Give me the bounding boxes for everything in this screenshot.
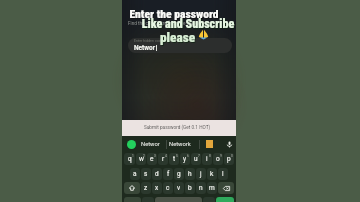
staticText: c — [166, 184, 170, 192]
button[interactable]: i — [202, 153, 212, 165]
staticText: t — [173, 155, 176, 163]
staticText: Networ — [134, 44, 156, 52]
button[interactable]: Voice input — [224, 139, 234, 149]
button[interactable]: c — [163, 182, 173, 194]
staticText: 1 — [132, 154, 134, 158]
staticText: s — [144, 170, 148, 178]
staticText: x — [155, 184, 159, 192]
button[interactable]: x — [152, 182, 162, 194]
staticText: j — [200, 170, 202, 178]
button[interactable]: u — [191, 153, 201, 165]
button[interactable]: l — [218, 168, 228, 180]
staticText: Submit password (Get 0.1 HOT) — [144, 125, 211, 131]
staticText: w — [139, 155, 144, 163]
button[interactable]: w — [136, 153, 146, 165]
staticText: i — [206, 155, 208, 163]
button[interactable]: a — [130, 168, 140, 180]
staticText: please — [160, 30, 196, 46]
staticText: 7 — [198, 154, 200, 158]
staticText: g — [177, 170, 181, 178]
button[interactable]: r — [158, 153, 168, 165]
button[interactable]: Enter — [216, 197, 234, 202]
button[interactable]: d — [152, 168, 162, 180]
staticText: 6 — [187, 154, 189, 158]
staticText: Networ — [141, 141, 160, 148]
button[interactable]: e — [147, 153, 157, 165]
button[interactable]: Backspace — [218, 182, 234, 194]
staticText: 0 — [231, 154, 233, 158]
staticText: m — [209, 184, 215, 192]
staticText: 4 — [165, 154, 167, 158]
staticText: k — [210, 170, 214, 178]
button[interactable]: g — [174, 168, 184, 180]
button[interactable]: n — [196, 182, 206, 194]
button[interactable]: v — [174, 182, 184, 194]
button[interactable]: h — [185, 168, 195, 180]
staticText: Enter the password — [118, 8, 232, 22]
staticText: Like and Subscribe — [132, 18, 246, 32]
staticText: z — [144, 184, 148, 192]
staticText: b — [188, 184, 192, 192]
button[interactable]: b — [185, 182, 195, 194]
staticText: Enter hidden codeword — [134, 39, 171, 43]
staticText: Find the code word from the source — [128, 21, 201, 26]
staticText: r — [162, 155, 165, 163]
staticText: o — [216, 155, 220, 163]
button[interactable]: j — [196, 168, 206, 180]
staticText: Network — [169, 141, 191, 148]
button[interactable]: k — [207, 168, 217, 180]
staticText: 8 — [209, 154, 211, 158]
staticText: q — [128, 155, 132, 163]
staticText: a — [133, 170, 137, 178]
staticText: 2 — [143, 154, 145, 158]
button[interactable]: Google Assistant — [127, 140, 136, 149]
staticText: y — [183, 155, 187, 163]
button[interactable]: Submit password (Get 0.1 HOT) — [122, 120, 236, 136]
button[interactable]: m — [207, 182, 217, 194]
staticText: Like and Subscribe — [131, 17, 245, 31]
button[interactable]: q — [124, 153, 135, 165]
staticText: u — [194, 155, 198, 163]
button[interactable]: f — [163, 168, 173, 180]
button[interactable]: t — [169, 153, 179, 165]
staticText: p — [227, 155, 231, 163]
staticText: 9 — [220, 154, 222, 158]
button[interactable]: Symbols — [124, 197, 141, 202]
button[interactable]: y — [180, 153, 190, 165]
button[interactable]: Space — [155, 197, 202, 202]
staticText: d — [155, 170, 159, 178]
button[interactable]: o — [213, 153, 223, 165]
staticText: please — [161, 31, 197, 47]
button[interactable]: s — [141, 168, 151, 180]
staticText: 5 — [176, 154, 178, 158]
staticText: v — [177, 184, 181, 192]
staticText: n — [199, 184, 203, 192]
staticText: l — [222, 170, 224, 178]
staticText: e — [150, 155, 154, 163]
button[interactable]: Enter hidden codeword — [128, 38, 232, 53]
staticText: 3 — [154, 154, 156, 158]
staticText: Enter the password — [117, 7, 231, 21]
button[interactable]: z — [141, 182, 151, 194]
button[interactable]: Shift — [124, 182, 140, 194]
button[interactable]: p — [224, 153, 234, 165]
button[interactable]: Networ — [141, 136, 160, 152]
staticText: h — [188, 170, 192, 178]
staticText: f — [167, 170, 170, 178]
button[interactable]: Network — [169, 136, 191, 152]
